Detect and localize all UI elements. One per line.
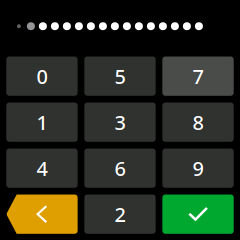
- staticText: 0: [36, 63, 47, 89]
- staticText: 1: [36, 109, 47, 135]
- staticText: 8: [192, 109, 203, 135]
- button[interactable]: 9: [162, 148, 234, 188]
- staticText: 3: [114, 109, 125, 135]
- button[interactable]: Confirm: [162, 194, 234, 234]
- button[interactable]: 6: [84, 148, 156, 188]
- staticText: 9: [192, 155, 203, 181]
- button[interactable]: 1: [6, 102, 78, 142]
- staticText: 2: [114, 201, 125, 227]
- button[interactable]: 8: [162, 102, 234, 142]
- button[interactable]: 0: [6, 56, 78, 96]
- staticText: 5: [114, 63, 125, 89]
- button[interactable]: 3: [84, 102, 156, 142]
- button[interactable]: 2: [84, 194, 156, 234]
- button[interactable]: 4: [6, 148, 78, 188]
- button[interactable]: 7: [162, 56, 234, 96]
- button[interactable]: 5: [84, 56, 156, 96]
- staticText: 4: [36, 155, 47, 181]
- staticText: 7: [192, 63, 203, 89]
- button[interactable]: Delete: [6, 194, 78, 234]
- staticText: 6: [114, 155, 125, 181]
